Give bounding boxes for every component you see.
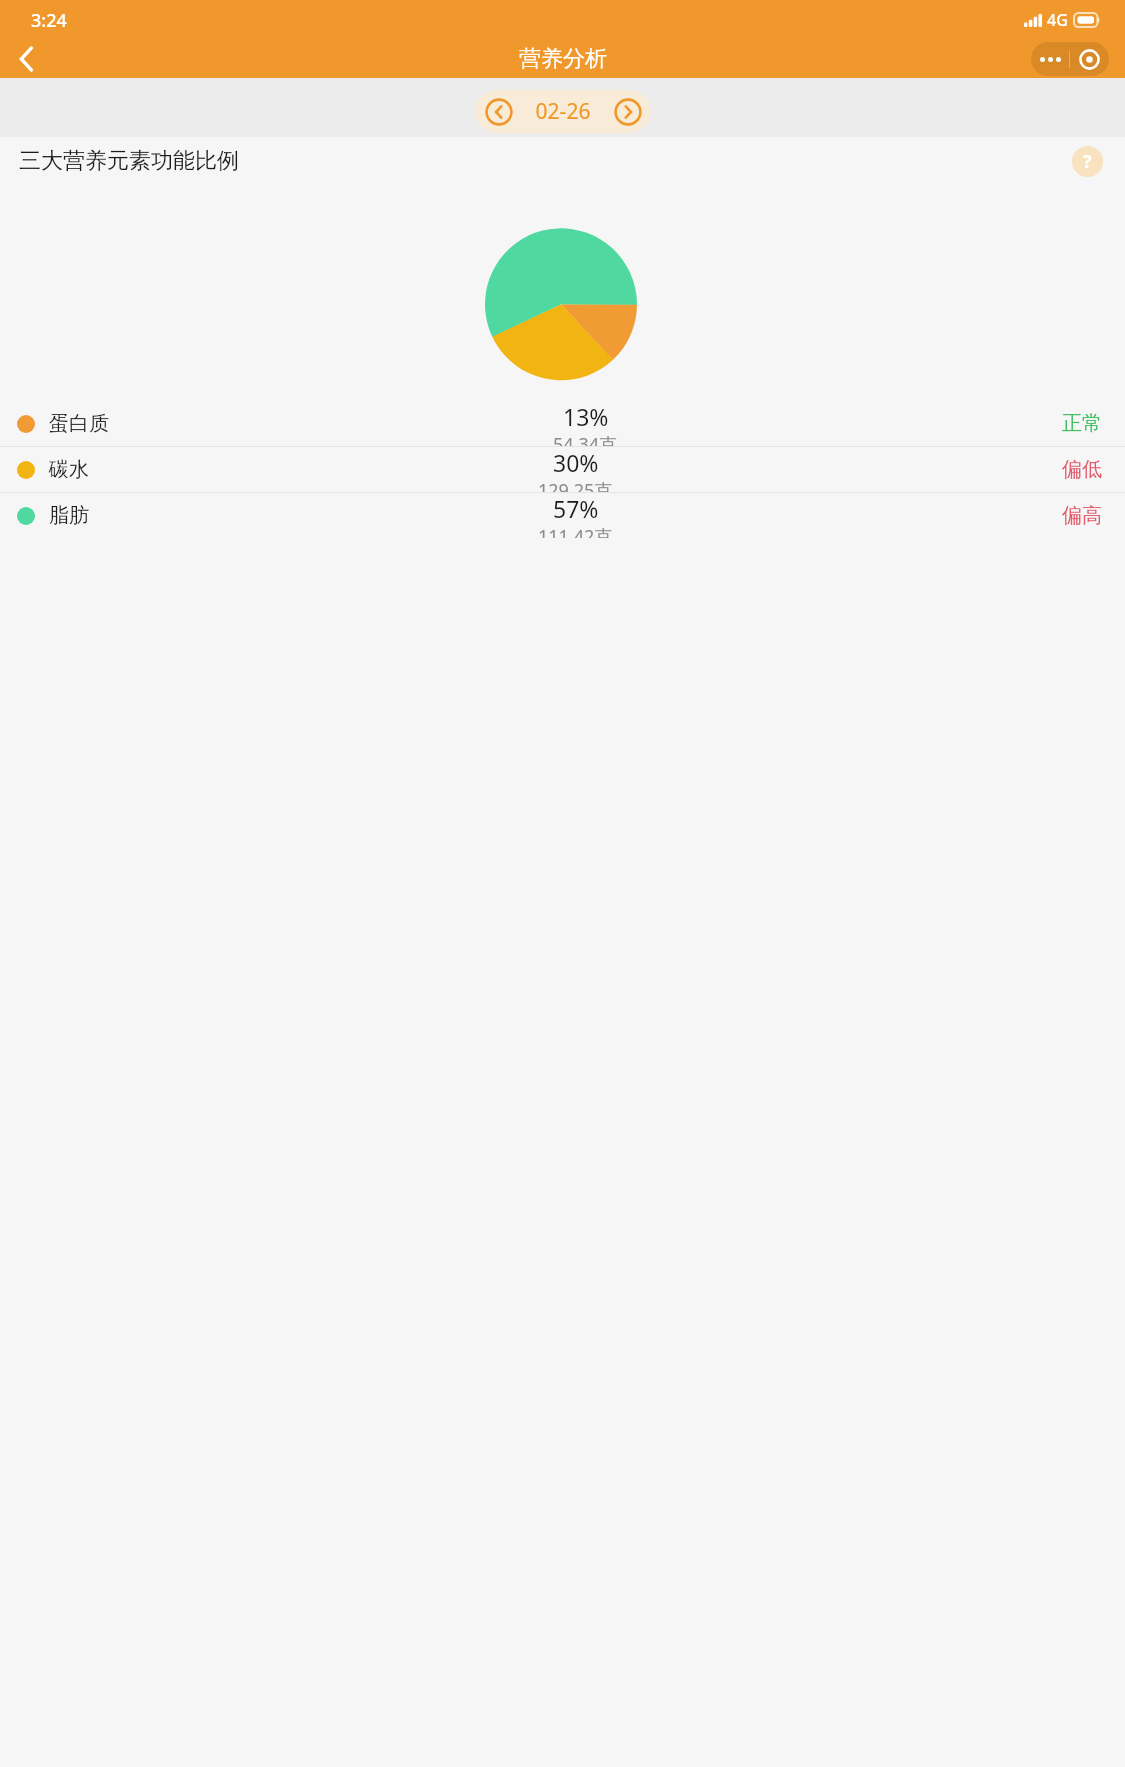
button[interactable]: Close mini program <box>1070 42 1109 76</box>
button[interactable]: 蛋白质 <box>0 401 1125 446</box>
button[interactable]: 碳水 <box>0 447 1125 492</box>
staticText: 脂肪 <box>49 503 89 528</box>
staticText: 偏低 <box>1062 457 1102 482</box>
staticText: 正常 <box>1062 411 1102 436</box>
staticText: 02-26 <box>522 97 604 126</box>
staticText: 偏高 <box>1062 503 1102 528</box>
staticText: 碳水 <box>49 457 89 482</box>
staticText: 129.25克 <box>538 478 613 492</box>
staticText: 蛋白质 <box>49 411 109 436</box>
button[interactable]: Back <box>2 40 50 78</box>
staticText: 4G <box>1047 9 1068 31</box>
staticText: 3:24 <box>31 8 67 33</box>
button[interactable]: Next day <box>604 90 651 133</box>
staticText: ? <box>1083 149 1092 174</box>
staticText: 111.42克 <box>538 524 613 538</box>
staticText: 13% <box>563 401 609 432</box>
staticText: 54.34克 <box>553 432 618 446</box>
staticText: 营养分析 <box>519 45 607 73</box>
staticText: 三大营养元素功能比例 <box>19 147 239 175</box>
button[interactable]: Previous day <box>475 90 522 133</box>
button[interactable]: Help <box>1072 146 1103 177</box>
staticText: 30% <box>553 447 599 478</box>
button[interactable]: 脂肪 <box>0 493 1125 538</box>
button[interactable]: More options <box>1031 42 1069 76</box>
staticText: 57% <box>553 493 599 524</box>
